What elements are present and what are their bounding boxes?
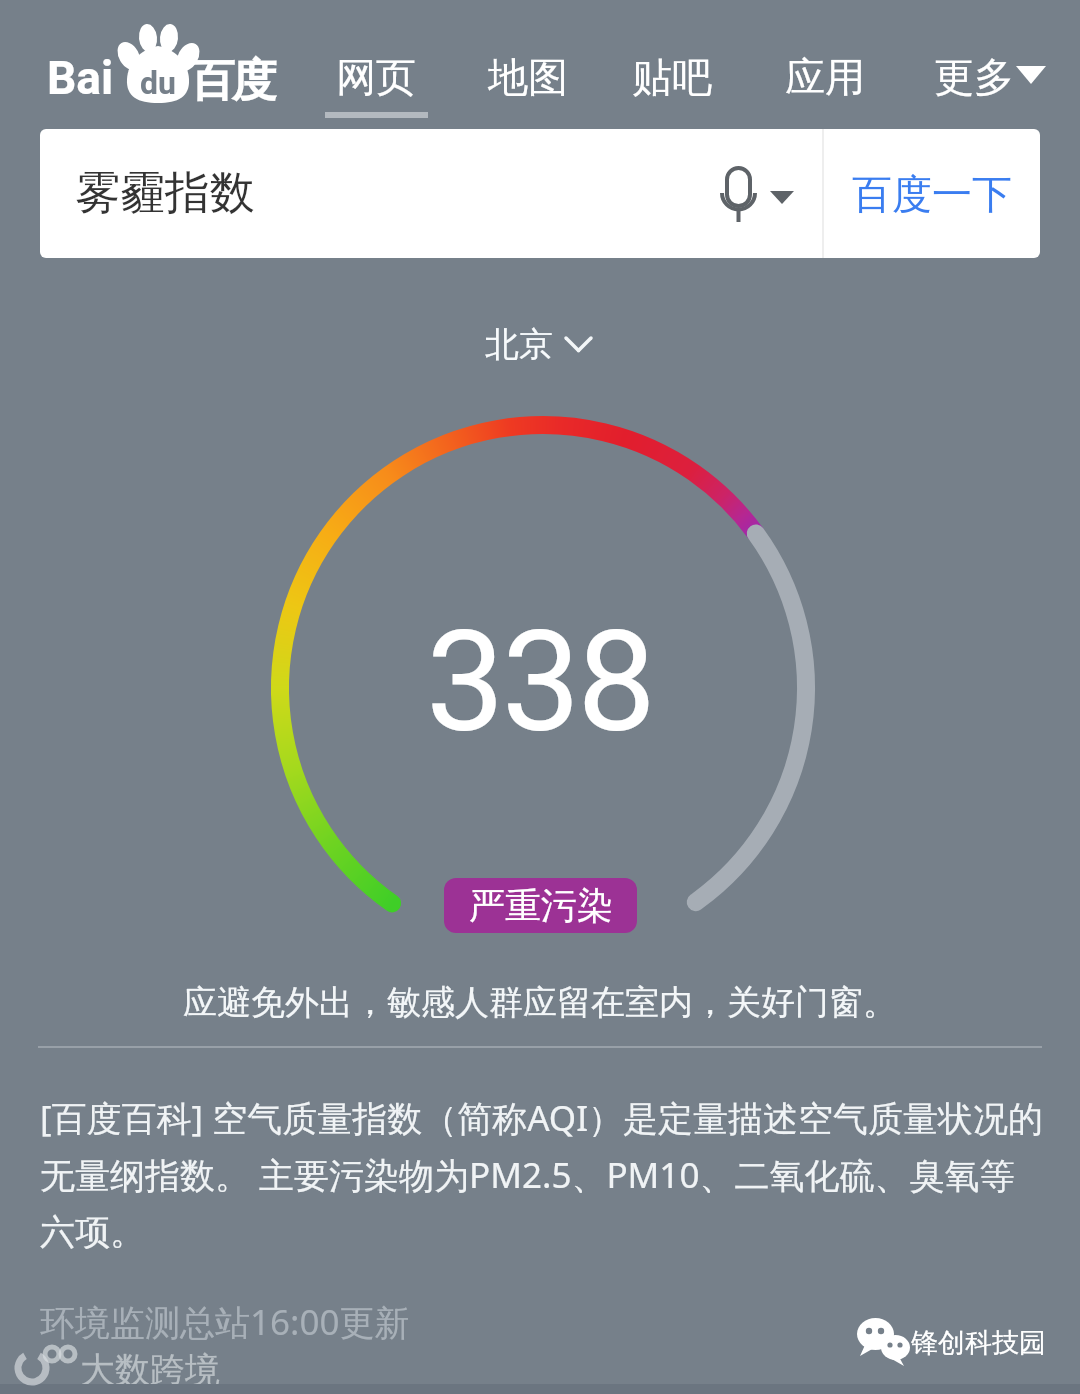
staticText: 环境监测总站16:00更新 — [40, 1298, 410, 1346]
button[interactable]: 锋创科技园 — [911, 1319, 1080, 1367]
button[interactable]: 网页 — [316, 49, 436, 105]
button[interactable]: 更多 — [914, 49, 1034, 105]
staticText: du — [140, 64, 176, 102]
staticText: 贴吧 — [632, 52, 712, 102]
staticText: 百度一下 — [852, 169, 1012, 219]
staticText: 锋创科技园 — [911, 1326, 1046, 1360]
staticText: 网页 — [336, 52, 416, 102]
staticText: [百度百科] 空气质量指数（简称AQI）是定量描述空气质量状况的 — [40, 1094, 1043, 1142]
staticText: 六项。 — [40, 1210, 145, 1254]
staticText: 雾霾指数 — [75, 165, 255, 222]
button[interactable]: 应用 — [765, 49, 885, 105]
button[interactable]: 贴吧 — [612, 49, 732, 105]
button[interactable]: 地图 — [468, 49, 588, 105]
staticText: 应用 — [785, 52, 865, 102]
staticText: 北京 — [485, 323, 553, 366]
staticText: 地图 — [488, 52, 568, 102]
staticText: 大数跨境 — [80, 1348, 220, 1392]
staticText: 无量纲指数。 主要污染物为PM2.5、PM10、二氧化硫、臭氧等 — [40, 1151, 1015, 1199]
staticText: 应避免外出，敏感人群应留在室内，关好门窗。 — [183, 981, 897, 1024]
staticText: Bai — [47, 51, 114, 105]
button[interactable]: 百度一下 — [824, 129, 1040, 258]
button[interactable]: 北京 — [419, 316, 619, 372]
button[interactable]: 严重污染 — [444, 878, 637, 933]
staticText: 百度 — [191, 53, 275, 110]
staticText: 更多 — [934, 52, 1014, 102]
button[interactable]: 雾霾指数 — [40, 129, 1040, 258]
staticText: 严重污染 — [469, 883, 613, 928]
staticText: 338 — [426, 600, 654, 760]
